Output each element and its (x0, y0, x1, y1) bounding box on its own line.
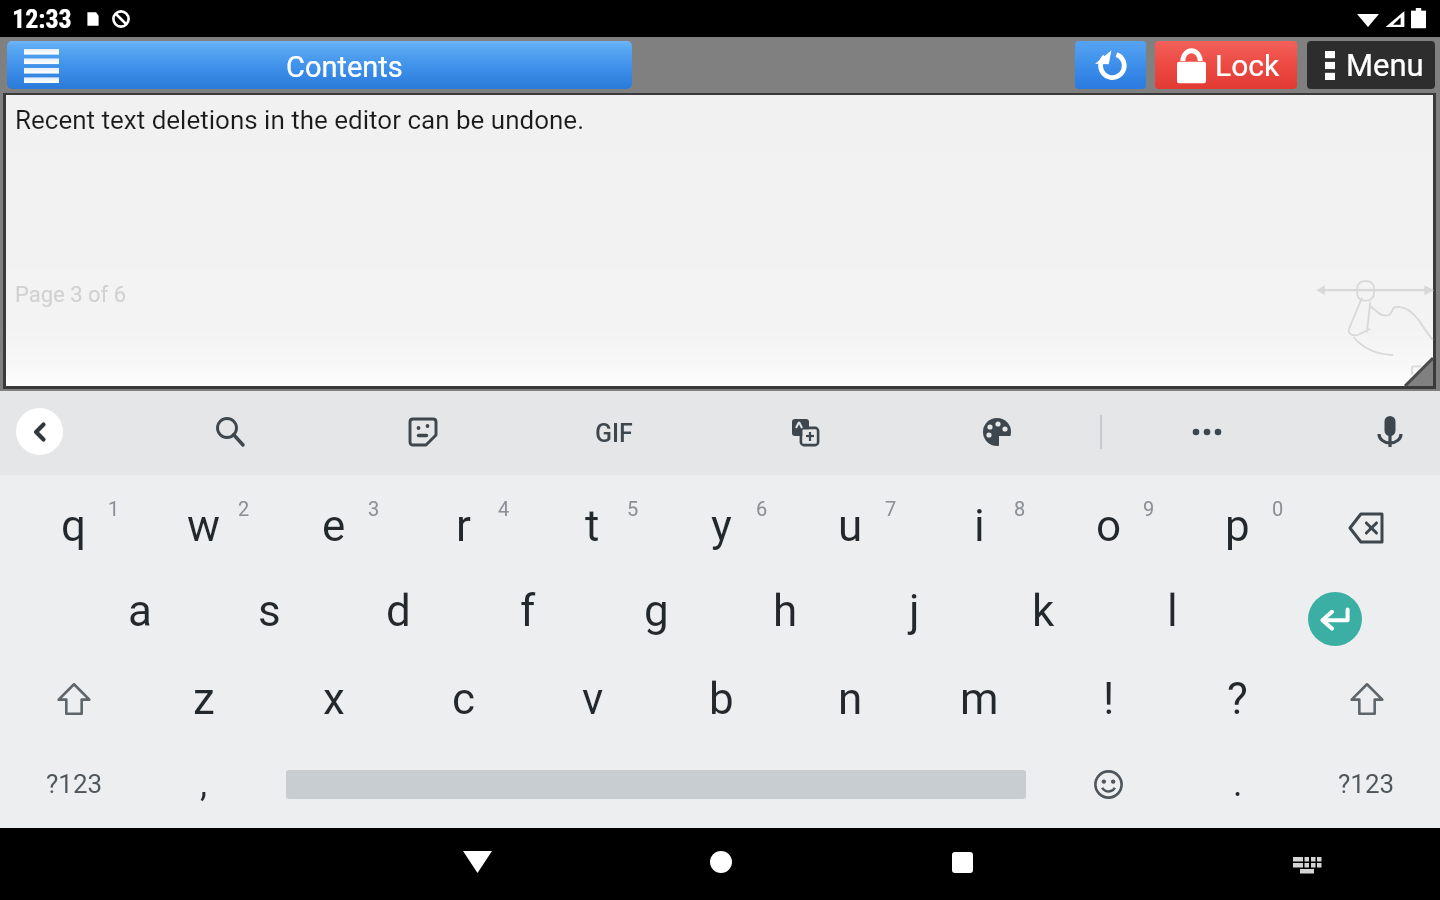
button[interactable]: , (139, 740, 268, 828)
staticText: , (200, 763, 208, 805)
button[interactable]: a (75, 564, 205, 652)
button[interactable]: k (979, 564, 1108, 652)
staticText: Lock (1215, 48, 1280, 83)
staticText: ?123 (1338, 769, 1395, 799)
button[interactable]: y (657, 475, 786, 564)
staticText: x (323, 673, 345, 725)
button[interactable]: b (657, 652, 786, 740)
button[interactable]: l (1108, 564, 1237, 652)
staticText: 4 (498, 497, 510, 520)
button[interactable]: Undo (1075, 41, 1146, 89)
staticText: 0 (1272, 497, 1284, 520)
button[interactable]: Shift (1302, 652, 1431, 740)
staticText: v (582, 673, 604, 725)
button[interactable]: e (269, 475, 399, 564)
staticText: Page 3 of 6 (15, 282, 127, 308)
button[interactable]: Enter (1297, 581, 1373, 657)
staticText: h (773, 585, 798, 637)
staticText: 12:33 (12, 4, 72, 34)
button[interactable]: p (1173, 475, 1302, 564)
button[interactable]: u (786, 475, 915, 564)
staticText: g (644, 585, 669, 637)
button[interactable]: h (721, 564, 850, 652)
button[interactable]: v (528, 652, 657, 740)
staticText: GIF (595, 419, 633, 448)
staticText: 2 (238, 497, 250, 520)
button[interactable]: . (1173, 740, 1302, 828)
staticText: w (187, 500, 221, 552)
staticText: c (452, 673, 476, 725)
staticText: y (711, 500, 732, 552)
button[interactable]: Shift (9, 652, 139, 740)
staticText: q (61, 500, 87, 552)
staticText: Recent text deletions in the editor can … (15, 105, 584, 135)
staticText: ? (1227, 673, 1248, 725)
staticText: 5 (627, 497, 639, 520)
staticText: s (258, 585, 281, 637)
button[interactable]: d (334, 564, 463, 652)
button[interactable]: Lock (1155, 41, 1297, 89)
button[interactable]: i (915, 475, 1044, 564)
staticText: 9 (1143, 497, 1155, 520)
staticText: 7 (885, 497, 897, 520)
staticText: b (709, 673, 734, 725)
button[interactable]: o (1044, 475, 1173, 564)
staticText: a (128, 585, 152, 637)
staticText: n (838, 673, 863, 725)
button[interactable]: m (915, 652, 1044, 740)
staticText: f (520, 585, 536, 637)
button[interactable]: t (528, 475, 657, 564)
staticText: 6 (756, 497, 768, 520)
staticText: ! (1103, 673, 1115, 725)
button[interactable]: c (399, 652, 528, 740)
staticText: i (974, 500, 985, 552)
button[interactable]: j (850, 564, 979, 652)
staticText: r (456, 500, 471, 552)
button[interactable]: f (463, 564, 592, 652)
staticText: e (322, 500, 346, 552)
button[interactable]: n (786, 652, 915, 740)
button[interactable] (268, 740, 1044, 828)
button[interactable]: Backspace (1302, 475, 1431, 564)
button[interactable]: ?123 (1302, 740, 1431, 828)
staticText: Menu (1346, 47, 1424, 83)
staticText: 3 (368, 497, 380, 520)
staticText: Contents (286, 50, 403, 84)
staticText: k (1032, 585, 1055, 637)
button[interactable]: w (139, 475, 269, 564)
button[interactable]: s (205, 564, 334, 652)
staticText: o (1096, 500, 1122, 552)
button[interactable]: ?123 (9, 740, 139, 828)
staticText: t (585, 500, 600, 552)
button[interactable]: r (399, 475, 528, 564)
staticText: 1 (108, 497, 120, 520)
button[interactable]: Emoji (1044, 740, 1173, 828)
staticText: j (909, 585, 920, 637)
staticText: z (193, 673, 215, 725)
staticText: d (386, 585, 411, 637)
button[interactable]: Back (16, 408, 63, 455)
staticText: u (838, 500, 863, 552)
button[interactable]: ? (1173, 652, 1302, 740)
button[interactable]: x (269, 652, 399, 740)
button[interactable]: q (9, 475, 139, 564)
button[interactable]: g (592, 564, 721, 652)
staticText: l (1167, 585, 1178, 637)
button[interactable]: z (139, 652, 269, 740)
button[interactable]: Contents (7, 41, 632, 89)
staticText: m (960, 673, 999, 725)
staticText: ?123 (46, 769, 103, 799)
button[interactable]: Menu (1307, 41, 1435, 89)
button[interactable]: ! (1044, 652, 1173, 740)
staticText: p (1225, 500, 1250, 552)
staticText: . (1233, 763, 1243, 805)
staticText: 8 (1014, 497, 1026, 520)
